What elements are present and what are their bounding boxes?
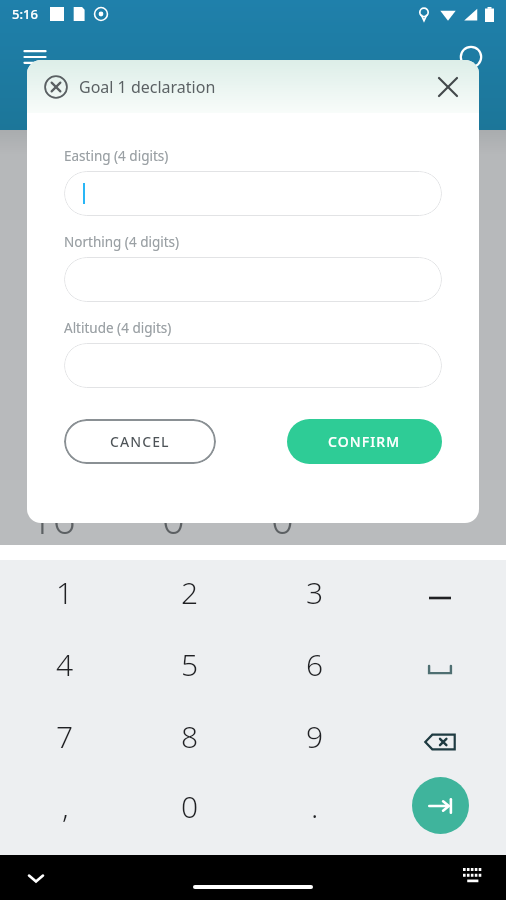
button[interactable]: 0 — [154, 770, 226, 842]
staticText: 8 — [181, 716, 199, 757]
staticText: CANCEL — [110, 432, 170, 451]
button[interactable] — [64, 257, 442, 302]
button[interactable]: Enter — [412, 777, 469, 834]
button[interactable]: More — [454, 40, 488, 74]
button[interactable]: 9 — [279, 700, 351, 772]
staticText: 16 — [30, 491, 76, 545]
staticText: 5 — [181, 644, 199, 685]
staticText: 6 — [306, 644, 324, 685]
staticText: , — [62, 786, 69, 827]
button[interactable]: Backspace — [408, 710, 472, 774]
button[interactable]: 1 — [29, 556, 101, 628]
staticText: 0 — [181, 786, 199, 827]
button[interactable]: CANCEL — [64, 419, 216, 464]
button[interactable]: 8 — [154, 700, 226, 772]
staticText: 1 — [56, 572, 74, 613]
staticText: 2 — [181, 572, 199, 613]
button[interactable]: 3 — [279, 556, 351, 628]
button[interactable]: Menu — [18, 40, 52, 74]
button[interactable]: Hide keyboard — [18, 860, 54, 896]
staticText: Goal 1 declaration — [79, 76, 216, 98]
staticText: 4 — [56, 644, 74, 685]
staticText: Northing (4 digits) — [64, 233, 180, 251]
staticText: . — [311, 786, 319, 827]
button[interactable]: 6 — [279, 628, 351, 700]
button[interactable]: Space — [408, 638, 472, 702]
staticText: 9 — [306, 716, 324, 757]
button[interactable] — [64, 171, 442, 216]
staticText: 0 — [271, 491, 294, 545]
button[interactable]: Goal info — [43, 74, 69, 100]
button[interactable]: 5 — [154, 628, 226, 700]
button[interactable]: Switch keyboard — [456, 861, 490, 895]
button[interactable]: CONFIRM — [287, 419, 442, 464]
staticText: 3 — [306, 572, 324, 613]
staticText: 7 — [56, 716, 74, 757]
button[interactable]: Minus — [408, 566, 472, 630]
staticText: 0 — [162, 491, 185, 545]
button[interactable]: 7 — [29, 700, 101, 772]
button[interactable]: 4 — [29, 628, 101, 700]
button[interactable]: 2 — [154, 556, 226, 628]
button[interactable]: , — [29, 770, 101, 842]
staticText: Easting (4 digits) — [64, 147, 169, 165]
button[interactable]: Close — [433, 72, 463, 102]
staticText: 5:16 — [12, 5, 38, 23]
staticText: CONFIRM — [328, 432, 401, 451]
staticText: Altitude (4 digits) — [64, 319, 172, 337]
button[interactable] — [64, 343, 442, 388]
button[interactable]: . — [279, 770, 351, 842]
